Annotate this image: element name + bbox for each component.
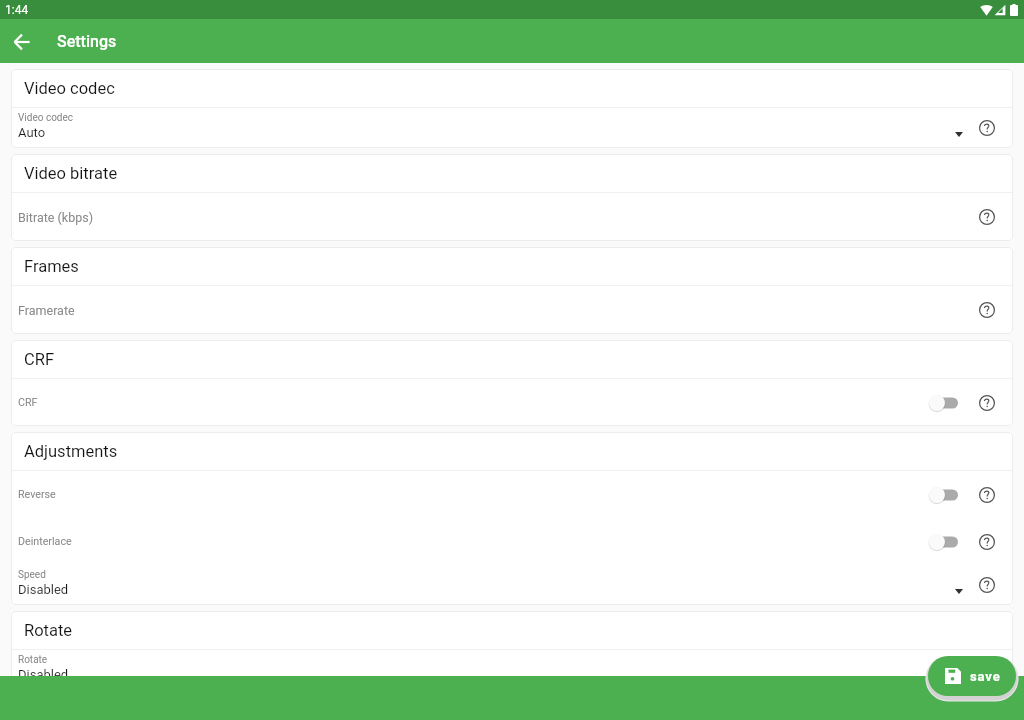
- button[interactable]: Help: [975, 391, 999, 415]
- staticText: Video codec: [18, 112, 74, 124]
- staticText: Framerate: [18, 303, 975, 318]
- staticText: CRF: [24, 350, 55, 369]
- button[interactable]: Help: [975, 530, 999, 554]
- staticText: Speed: [18, 569, 46, 581]
- button[interactable]: Bitrate (kbps): [11, 193, 1013, 241]
- staticText: Reverse: [18, 488, 927, 501]
- staticText: save: [970, 669, 1001, 684]
- staticText: Disabled: [18, 667, 69, 682]
- staticText: Deinterlace: [18, 535, 927, 548]
- button[interactable]: Framerate: [11, 286, 1013, 334]
- button[interactable]: Help: [975, 573, 999, 597]
- staticText: Frames: [24, 257, 79, 276]
- staticText: Rotate: [24, 621, 73, 640]
- button[interactable]: Help: [975, 658, 999, 682]
- button[interactable]: Help: [975, 205, 999, 229]
- button[interactable]: save: [928, 656, 1016, 696]
- button[interactable]: Toggle: [927, 530, 961, 554]
- staticText: Video codec: [24, 79, 115, 98]
- staticText: Disabled: [18, 582, 69, 597]
- button[interactable]: Reverse: [11, 471, 1013, 518]
- button[interactable]: Help: [975, 483, 999, 507]
- button[interactable]: Rotate: [11, 650, 1013, 690]
- button[interactable]: CRF: [11, 379, 1013, 426]
- staticText: Adjustments: [24, 442, 118, 461]
- button[interactable]: Toggle: [927, 391, 961, 415]
- staticText: Bitrate (kbps): [18, 210, 975, 225]
- button[interactable]: Help: [975, 116, 999, 140]
- button[interactable]: Toggle: [927, 483, 961, 507]
- button[interactable]: Speed: [11, 565, 1013, 605]
- button[interactable]: Help: [975, 298, 999, 322]
- button[interactable]: Navigation bar: [0, 676, 1024, 720]
- staticText: Auto: [18, 125, 46, 140]
- button[interactable]: Video codec: [11, 108, 1013, 148]
- button[interactable]: Back: [8, 27, 36, 55]
- staticText: Settings: [57, 32, 117, 51]
- staticText: Rotate: [18, 654, 48, 666]
- staticText: CRF: [18, 396, 927, 409]
- staticText: Video bitrate: [24, 164, 118, 183]
- staticText: 1:44: [5, 3, 29, 17]
- button[interactable]: Deinterlace: [11, 518, 1013, 565]
